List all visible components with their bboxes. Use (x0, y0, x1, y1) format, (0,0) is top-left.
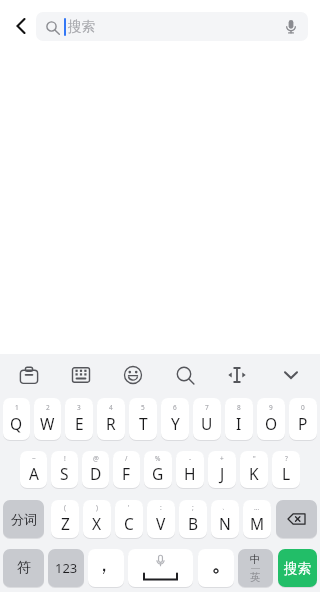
staticText: V (156, 513, 166, 534)
staticText: Z (61, 513, 70, 534)
staticText: " (253, 454, 256, 463)
button[interactable] (9, 354, 49, 390)
staticText: + (220, 454, 224, 463)
staticText: 9 (269, 403, 273, 412)
staticText: 5 (141, 403, 145, 412)
staticText: ; (192, 503, 194, 512)
button[interactable]: ~ (20, 451, 47, 488)
staticText: ? (285, 454, 288, 463)
button[interactable]: … (243, 500, 271, 538)
staticText: J (220, 463, 225, 484)
button[interactable]: 7 (193, 398, 221, 440)
button[interactable]: 123 (48, 549, 84, 587)
staticText: C (124, 513, 134, 534)
staticText: - (189, 454, 192, 463)
staticText: K (249, 463, 259, 484)
staticText: X (92, 513, 102, 534)
staticText: 7 (205, 403, 209, 412)
button[interactable]: 9 (257, 398, 285, 440)
button[interactable]: 2 (34, 398, 61, 440)
staticText: P (298, 413, 308, 434)
button[interactable] (217, 354, 257, 390)
staticText: : (160, 503, 162, 512)
staticText: T (139, 413, 148, 434)
staticText: 4 (109, 403, 113, 412)
button[interactable]: ( (51, 500, 79, 538)
button[interactable] (165, 354, 205, 390)
staticText: L (282, 463, 291, 484)
button[interactable] (271, 354, 311, 390)
staticText: ! (64, 454, 66, 463)
button[interactable]: 5 (129, 398, 157, 440)
staticText: 符 (17, 559, 31, 577)
staticText: 123 (55, 559, 78, 577)
staticText: F (122, 463, 131, 484)
staticText: N (219, 513, 231, 534)
staticText: R (106, 413, 116, 434)
button[interactable]: " (240, 451, 268, 488)
staticText: 0 (301, 403, 305, 412)
button[interactable]: ! (51, 451, 78, 488)
staticText: E (75, 413, 84, 434)
staticText: ， (94, 552, 114, 577)
button[interactable]: - (176, 451, 204, 488)
staticText: Y (171, 413, 180, 434)
button[interactable]: / (113, 451, 140, 488)
staticText: B (188, 513, 199, 534)
button[interactable]: ' (115, 500, 143, 538)
staticText: O (265, 413, 278, 434)
staticText: S (60, 463, 69, 484)
staticText: 分词 (11, 511, 37, 527)
button[interactable] (276, 500, 317, 538)
button[interactable]: 0 (289, 398, 317, 440)
staticText: … (254, 503, 260, 512)
staticText: ( (64, 503, 66, 512)
button[interactable]: + (208, 451, 236, 488)
staticText: U (201, 413, 213, 434)
button[interactable]: ) (83, 500, 111, 538)
button[interactable] (61, 354, 101, 390)
button[interactable]: ? (272, 451, 300, 488)
button[interactable] (198, 549, 234, 587)
staticText: H (184, 463, 196, 484)
button[interactable]: 1 (3, 398, 30, 440)
staticText: A (29, 463, 39, 484)
button[interactable] (113, 354, 153, 390)
button[interactable]: 6 (161, 398, 189, 440)
staticText: I (236, 413, 242, 434)
button[interactable]: 搜索 (36, 12, 308, 41)
button[interactable]: 搜索 (278, 549, 317, 587)
button[interactable] (128, 549, 193, 587)
button[interactable]: 分词 (3, 500, 44, 538)
staticText: W (40, 413, 55, 434)
button[interactable]: ， (88, 549, 124, 587)
staticText: ' (128, 503, 130, 512)
button[interactable] (0, 0, 36, 52)
staticText: 8 (237, 403, 241, 412)
button[interactable]: 符 (3, 549, 44, 587)
button[interactable]: 、 (211, 500, 239, 538)
button[interactable]: @ (82, 451, 109, 488)
staticText: ) (96, 503, 98, 512)
staticText: % (155, 454, 161, 463)
staticText: 中 (250, 553, 261, 566)
button[interactable]: 8 (225, 398, 253, 440)
staticText: 、 (222, 503, 229, 511)
button[interactable]: % (144, 451, 172, 488)
button[interactable]: : (147, 500, 175, 538)
button[interactable]: ; (179, 500, 207, 538)
staticText: M (250, 513, 265, 534)
staticText: 3 (77, 403, 81, 412)
staticText: G (152, 463, 164, 484)
staticText: 1 (15, 403, 19, 412)
staticText: 2 (46, 403, 50, 412)
staticText: D (90, 463, 102, 484)
staticText: ~ (32, 454, 36, 463)
staticText: @ (93, 454, 99, 463)
button[interactable]: 3 (65, 398, 93, 440)
staticText: / (125, 454, 128, 463)
button[interactable]: 4 (97, 398, 125, 440)
staticText: 搜索 (68, 18, 95, 35)
staticText: 英 (250, 571, 261, 584)
button[interactable]: 中 (238, 549, 273, 587)
